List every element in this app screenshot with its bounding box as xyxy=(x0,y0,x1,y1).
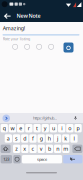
staticText: https://github… xyxy=(33,115,57,121)
button[interactable]: Dictate xyxy=(73,115,78,120)
button[interactable]: h xyxy=(46,134,53,143)
button[interactable]: r xyxy=(25,124,32,132)
button[interactable]: l xyxy=(70,134,78,143)
button[interactable]: Shift xyxy=(1,145,11,153)
button[interactable]: c xyxy=(29,145,37,153)
staticText: j xyxy=(57,135,58,142)
staticText: v xyxy=(40,145,43,152)
staticText: p xyxy=(76,125,79,132)
button[interactable]: o xyxy=(66,124,73,132)
staticText: b xyxy=(48,145,51,152)
button[interactable]: space xyxy=(22,155,62,163)
staticText: n xyxy=(56,145,59,152)
button[interactable]: i xyxy=(58,124,65,132)
button[interactable]: Add photo xyxy=(63,42,73,52)
staticText: c xyxy=(31,145,34,152)
button[interactable]: s xyxy=(13,134,20,143)
button[interactable]: k xyxy=(62,134,69,143)
button[interactable]: 123 xyxy=(1,155,12,163)
button[interactable]: Delete xyxy=(72,145,82,153)
button[interactable]: m xyxy=(62,145,69,153)
button[interactable]: Rating option xyxy=(24,44,30,49)
button[interactable]: Emoji xyxy=(13,155,21,163)
staticText: New Note xyxy=(16,12,40,19)
staticText: space xyxy=(37,156,47,162)
staticText: w xyxy=(10,125,14,132)
staticText: d xyxy=(23,135,26,142)
staticText: i xyxy=(61,125,62,132)
staticText: f xyxy=(32,135,34,142)
staticText: Amazing! xyxy=(3,25,25,32)
button[interactable]: Rating option xyxy=(12,44,18,49)
button[interactable]: Next field xyxy=(2,114,10,122)
staticText: e xyxy=(19,125,22,132)
button[interactable]: w xyxy=(9,124,16,132)
staticText: k xyxy=(64,135,67,142)
button[interactable]: a xyxy=(5,134,12,143)
button[interactable]: p xyxy=(74,124,82,132)
staticText: z xyxy=(15,145,18,152)
staticText: 123 xyxy=(3,156,9,162)
staticText: m xyxy=(63,145,68,152)
button[interactable]: u xyxy=(50,124,57,132)
button[interactable]: e xyxy=(17,124,24,132)
button[interactable]: q xyxy=(1,124,8,132)
button[interactable]: x xyxy=(21,145,28,153)
button[interactable]: n xyxy=(54,145,61,153)
button[interactable]: Return xyxy=(63,155,82,163)
staticText: o xyxy=(68,125,71,132)
button[interactable]: Rating option xyxy=(36,44,42,49)
staticText: Rate your listing xyxy=(3,36,30,41)
button[interactable]: d xyxy=(21,134,28,143)
button[interactable]: g xyxy=(37,134,45,143)
button[interactable]: b xyxy=(46,145,53,153)
button[interactable]: j xyxy=(54,134,61,143)
button[interactable]: y xyxy=(42,124,49,132)
staticText: u xyxy=(52,125,55,132)
button[interactable]: t xyxy=(33,124,41,132)
staticText: g xyxy=(40,135,43,142)
staticText: s xyxy=(15,135,18,142)
staticText: h xyxy=(48,135,51,142)
button[interactable]: Back xyxy=(3,12,12,20)
staticText: a xyxy=(7,135,10,142)
staticText: q xyxy=(3,125,6,132)
staticText: r xyxy=(28,125,30,132)
staticText: t xyxy=(36,125,38,132)
staticText: x xyxy=(23,145,26,152)
staticText: y xyxy=(44,125,47,132)
button[interactable]: f xyxy=(29,134,37,143)
button[interactable]: v xyxy=(38,145,45,153)
button[interactable]: Rating option xyxy=(48,44,54,49)
button[interactable]: z xyxy=(13,145,20,153)
